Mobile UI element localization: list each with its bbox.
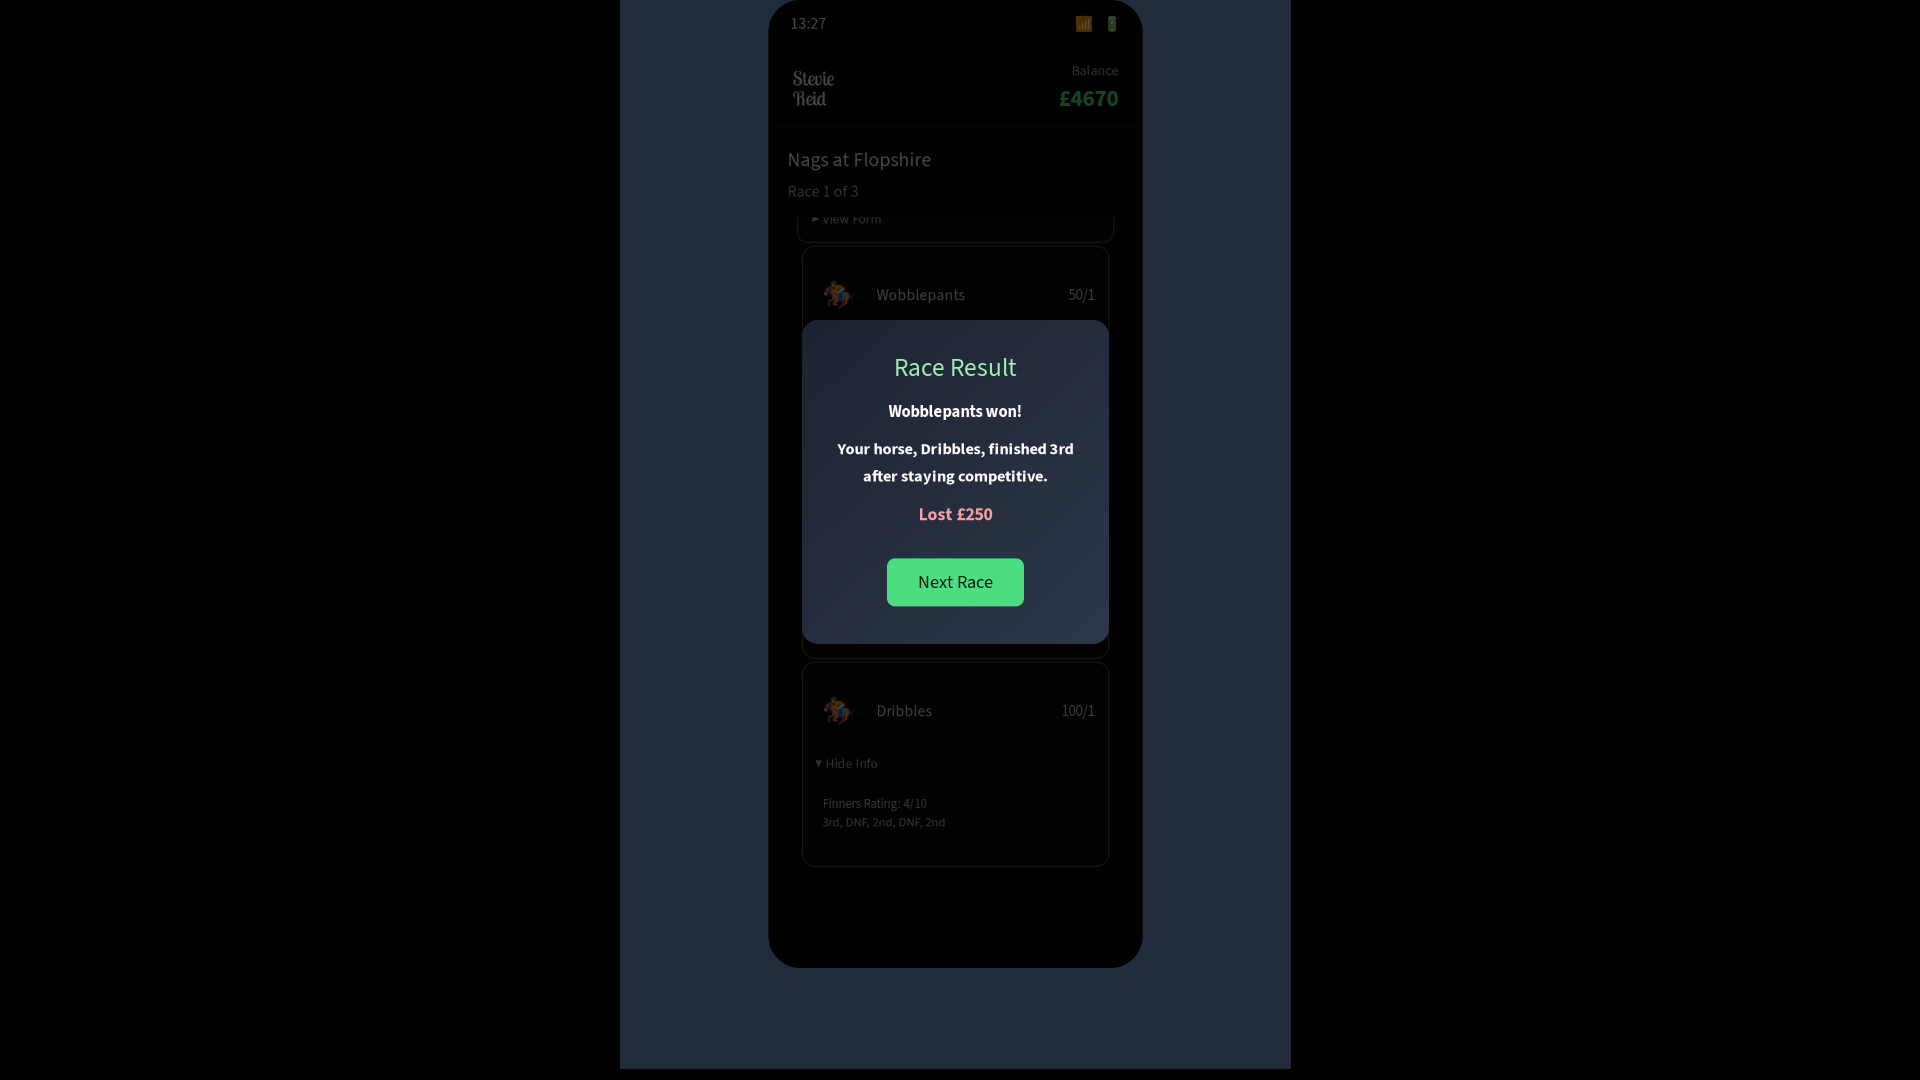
staticText: 📶 bbox=[1074, 15, 1092, 33]
staticText: £4670 bbox=[1058, 82, 1118, 115]
staticText: Race 1 of 3 bbox=[787, 180, 858, 203]
staticText: after staying competitive. bbox=[863, 465, 1048, 488]
staticText: Wobblepants won! bbox=[888, 400, 1022, 424]
staticText: Reid bbox=[792, 85, 826, 110]
staticText: Clattercluck bbox=[876, 492, 955, 514]
staticText: 3rd, DNF, 2nd, DNF, 2nd bbox=[822, 397, 945, 415]
staticText: Nags at Flopshire bbox=[787, 146, 931, 174]
button[interactable]: 🏇 bbox=[802, 454, 1108, 658]
staticText: 100/1 bbox=[1061, 701, 1094, 722]
staticText: Lost £250 bbox=[918, 502, 992, 527]
staticText: ▼ Hide Info bbox=[814, 754, 877, 774]
button[interactable]: Next Race bbox=[887, 558, 1024, 606]
button[interactable]: 🏇 bbox=[802, 246, 1108, 450]
staticText: Race Result bbox=[894, 350, 1017, 386]
staticText: 🔋 bbox=[1102, 15, 1120, 33]
staticText: 🏇 bbox=[821, 280, 854, 311]
staticText: 3rd, DNF, 2nd, DNF, 2nd bbox=[822, 605, 945, 623]
staticText: ▶ View Form bbox=[811, 210, 881, 229]
staticText: Dribbles bbox=[876, 700, 932, 722]
staticText: Finners Rating: 4/10 bbox=[822, 795, 926, 813]
staticText: 🏇 bbox=[821, 696, 854, 727]
staticText: 3rd, DNF, 2nd, DNF, 2nd bbox=[822, 813, 945, 831]
staticText: Wobblepants bbox=[876, 284, 965, 306]
staticText: Stevie bbox=[792, 65, 834, 90]
staticText: Finners Rating: 4/10 bbox=[822, 587, 926, 605]
staticText: Balance bbox=[1071, 61, 1118, 81]
staticText: 50/1 bbox=[1068, 284, 1094, 306]
button[interactable]: ▶ View Form bbox=[797, 196, 1113, 242]
staticText: Next Race bbox=[918, 569, 993, 595]
staticText: Your horse, Dribbles, finished 3rd bbox=[837, 438, 1073, 461]
staticText: 13:27 bbox=[790, 13, 826, 35]
button[interactable]: 🏇 bbox=[802, 662, 1108, 866]
